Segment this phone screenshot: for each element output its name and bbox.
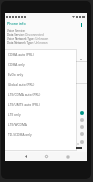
button[interactable]: Recent apps bbox=[56, 152, 80, 161]
staticText: Phone info bbox=[7, 21, 26, 26]
button[interactable]: Network mode option bbox=[80, 125, 84, 129]
button[interactable]: Home bbox=[34, 152, 58, 161]
staticText: LTE/CDMA auto (PRL) bbox=[8, 93, 41, 97]
button[interactable]: Network mode option bbox=[80, 132, 84, 136]
button[interactable]: Back bbox=[14, 152, 38, 161]
staticText: Voice Service: bbox=[7, 29, 26, 33]
button[interactable]: Network mode option bbox=[80, 140, 84, 144]
staticText: TD-SCDMA only bbox=[8, 133, 32, 137]
button[interactable]: CDMA only bbox=[5, 60, 76, 70]
staticText: LTE/UMTS auto (PRL) bbox=[8, 103, 40, 107]
staticText: Voice Network Type: Unknown bbox=[7, 37, 49, 41]
button[interactable]: EvDo only bbox=[5, 70, 76, 80]
button[interactable]: TD-SCDMA only bbox=[5, 130, 76, 140]
staticText: CDMA auto (PRL) bbox=[8, 53, 34, 57]
button[interactable]: CDMA auto (PRL) bbox=[5, 50, 76, 60]
button[interactable]: Network mode option bbox=[80, 111, 84, 115]
staticText: LTE/WCDMA bbox=[8, 123, 27, 127]
button[interactable]: LTE/UMTS auto (PRL) bbox=[5, 100, 76, 110]
staticText: Data Service: Disconnected bbox=[7, 33, 44, 37]
staticText: CDMA only bbox=[8, 63, 25, 67]
button[interactable]: Network mode option bbox=[80, 118, 84, 122]
button[interactable]: Global auto (PRL) bbox=[5, 80, 76, 90]
button[interactable]: LTE/WCDMA bbox=[5, 120, 76, 130]
staticText: LTE only bbox=[8, 113, 21, 117]
staticText: EvDo only bbox=[8, 73, 24, 77]
button[interactable]: LTE/CDMA auto (PRL) bbox=[5, 90, 76, 100]
button[interactable]: LTE only bbox=[5, 110, 76, 120]
staticText: Data Network Type: Unknown bbox=[7, 41, 48, 45]
staticText: Global auto (PRL) bbox=[8, 83, 35, 87]
